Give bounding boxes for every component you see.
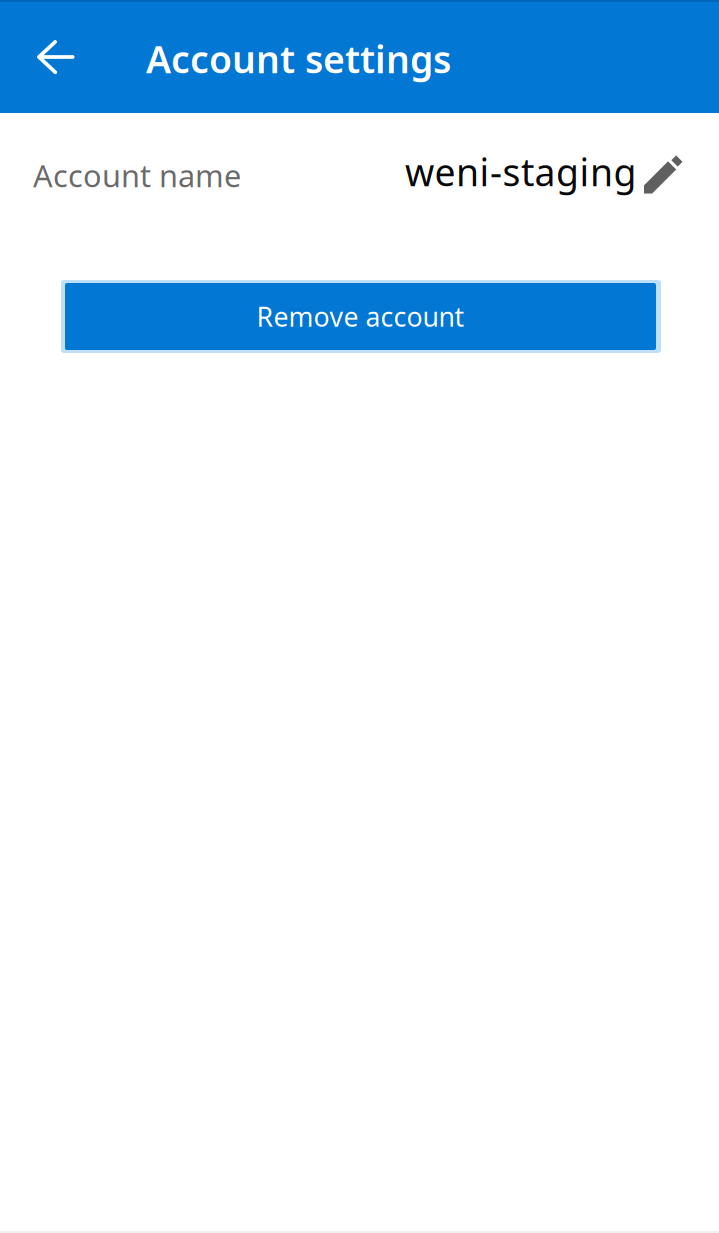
button[interactable]: Edit account name <box>405 146 685 206</box>
button[interactable]: Remove account <box>61 280 661 353</box>
staticText: Remove account <box>256 299 464 334</box>
button[interactable]: Back <box>14 1 98 114</box>
staticText: weni-staging <box>405 147 636 197</box>
staticText: Account settings <box>146 34 451 84</box>
staticText: Account name <box>33 155 241 196</box>
